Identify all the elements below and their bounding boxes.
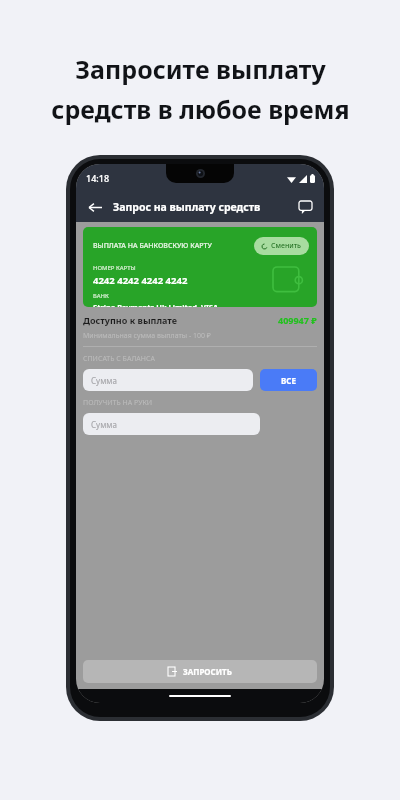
staticText: Минимальная сумма выплаты - 100 ₽ [83, 331, 211, 341]
staticText: ПОЛУЧИТЬ НА РУКИ [83, 398, 153, 408]
button[interactable]: Сумма [83, 369, 253, 391]
staticText: Stripe Payments Uk Limited, VISA [93, 302, 219, 307]
staticText: Запросите выплату [75, 52, 326, 86]
staticText: ВЫПЛАТА НА БАНКОВСКУЮ КАРТУ [93, 241, 212, 251]
staticText: ВСЕ [281, 375, 296, 386]
button[interactable]: Чат [296, 198, 314, 216]
staticText: БАНК [93, 292, 109, 300]
staticText: Запрос на выплату средств [113, 200, 261, 214]
staticText: НОМЕР КАРТЫ [93, 264, 136, 272]
button[interactable]: ВЫПЛАТА НА БАНКОВСКУЮ КАРТУ [83, 227, 317, 307]
staticText: 409947 ₽ [278, 314, 317, 326]
button[interactable]: Назад [86, 198, 104, 216]
staticText: 14:18 [86, 172, 110, 184]
staticText: средств в любое время [51, 92, 350, 126]
staticText: Доступно к выплате [83, 314, 178, 326]
staticText: Сменить [271, 241, 302, 251]
staticText: Сумма [91, 375, 117, 386]
button[interactable]: ВСЕ [260, 369, 317, 391]
staticText: Сумма [91, 419, 117, 430]
staticText: СПИСАТЬ С БАЛАНСА [83, 354, 155, 364]
button[interactable]: ЗАПРОСИТЬ [83, 660, 317, 683]
button[interactable]: Сумма [83, 413, 260, 435]
staticText: 4242 4242 4242 4242 [93, 274, 188, 287]
button[interactable]: Сменить [254, 237, 309, 255]
staticText: ЗАПРОСИТЬ [183, 666, 232, 677]
